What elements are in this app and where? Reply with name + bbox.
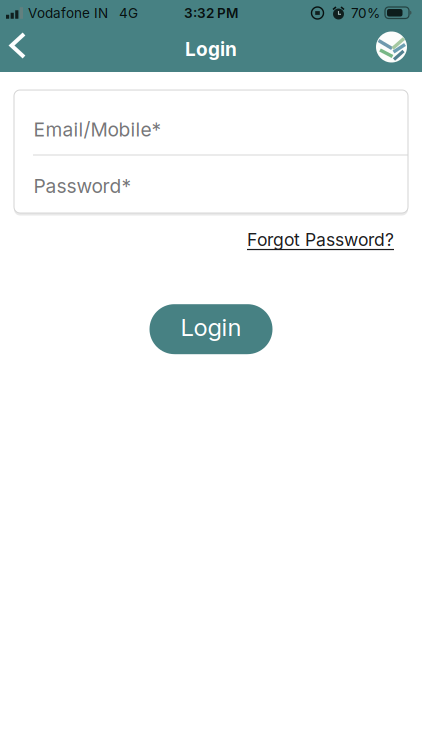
staticText: Password*	[33, 174, 131, 198]
staticText: 70%	[351, 5, 380, 21]
staticText: Email/Mobile*	[33, 118, 161, 141]
button[interactable]: Forgot Password?	[247, 229, 394, 250]
staticText: 3:32 PM	[184, 5, 238, 21]
staticText: 4G	[119, 5, 138, 21]
button[interactable]: Email/Mobile	[15, 90, 406, 154]
button[interactable]: Login	[149, 304, 272, 354]
staticText: Login	[185, 37, 237, 60]
staticText: Vodafone IN	[28, 5, 108, 21]
staticText: Forgot Password?	[247, 229, 394, 250]
staticText: Login	[180, 313, 241, 342]
button[interactable]: App logo	[376, 31, 422, 66]
button[interactable]: Back	[0, 32, 34, 66]
button[interactable]: Password	[15, 155, 406, 212]
